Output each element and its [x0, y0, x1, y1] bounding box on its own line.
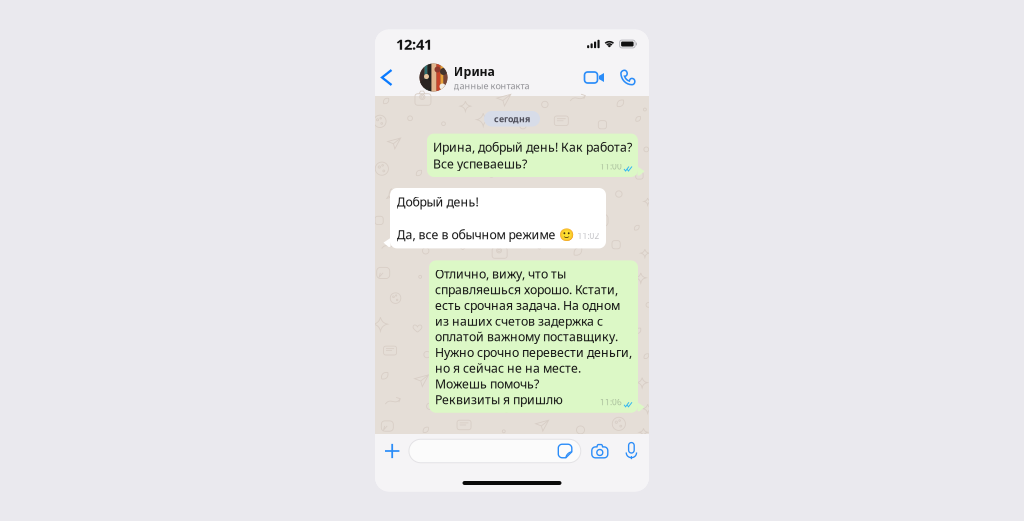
- staticText: Добрый день!: [396, 193, 478, 210]
- staticText: Можешь помочь?: [435, 375, 539, 392]
- staticText: данные контакта: [453, 80, 529, 92]
- button[interactable]: Ирина: [397, 63, 529, 92]
- staticText: есть срочная задача. На одном: [435, 297, 620, 313]
- staticText: оплатой важному поставщику.: [435, 328, 618, 345]
- staticText: Нужно срочно перевести деньги,: [435, 344, 632, 361]
- button[interactable]: Record voice message: [616, 442, 638, 459]
- staticText: 11:00: [600, 161, 622, 172]
- button[interactable]: Stickers: [558, 440, 581, 462]
- staticText: но я сейчас не на месте.: [435, 360, 581, 376]
- staticText: Да, все в обычном режиме 🙂: [396, 226, 573, 243]
- staticText: 11:06: [600, 396, 622, 408]
- staticText: 12:41: [396, 34, 432, 54]
- staticText: справляешься хорошо. Кстати,: [435, 281, 618, 298]
- staticText: сегодня: [494, 113, 530, 125]
- staticText: Отлично, вижу, что ты: [435, 265, 566, 282]
- staticText: 11:02: [577, 230, 599, 241]
- staticText: Реквизиты я пришлю: [435, 391, 563, 408]
- staticText: Ирина: [453, 63, 494, 80]
- button[interactable]: Video call: [581, 64, 607, 91]
- staticText: Все успеваешь?: [433, 155, 527, 172]
- staticText: Ирина, добрый день! Как работа?: [433, 139, 632, 155]
- button[interactable]: Camera: [581, 439, 616, 463]
- button[interactable]: Voice call: [607, 64, 638, 91]
- button[interactable]: Attach: [380, 438, 404, 464]
- staticText: из наших счетов задержка с: [435, 312, 603, 329]
- button[interactable]: Back: [375, 61, 397, 94]
